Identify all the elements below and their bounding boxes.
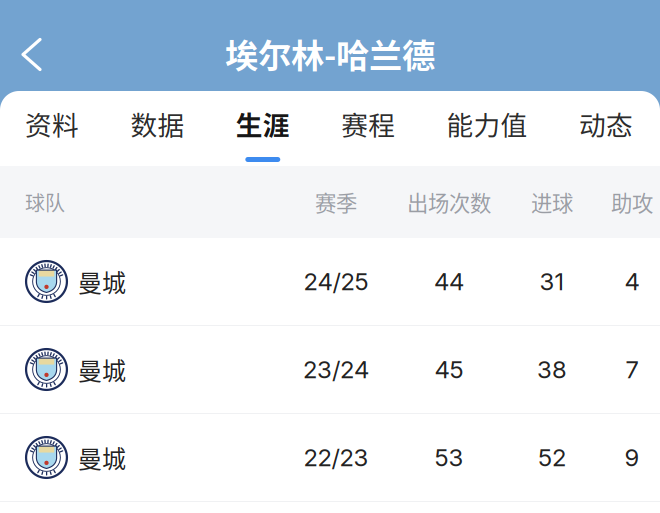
button[interactable]: 曼城 — [0, 414, 660, 501]
staticText: 动态 — [579, 104, 633, 143]
staticText: 45 — [434, 355, 463, 384]
button[interactable]: 数据 — [130, 91, 184, 166]
button[interactable]: 曼城 — [0, 238, 660, 325]
button[interactable]: 赛程 — [341, 91, 395, 166]
staticText: 进球 — [531, 187, 573, 217]
staticText: 曼城 — [78, 352, 126, 387]
staticText: 53 — [434, 443, 463, 472]
staticText: 资料 — [25, 104, 79, 143]
staticText: 曼城 — [78, 264, 126, 299]
staticText: 赛季 — [315, 187, 357, 217]
button[interactable]: 能力值 — [447, 91, 528, 166]
button[interactable]: 动态 — [579, 91, 633, 166]
staticText: 球队 — [25, 187, 65, 216]
staticText: 38 — [537, 355, 567, 384]
staticText: 埃尔林-哈兰德 — [225, 29, 435, 78]
staticText: 4 — [624, 267, 639, 296]
staticText: 44 — [434, 267, 464, 296]
staticText: 生涯 — [236, 104, 290, 143]
staticText: 赛程 — [341, 104, 395, 143]
button[interactable]: 曼城 — [0, 326, 660, 413]
staticText: 22/23 — [303, 443, 368, 472]
staticText: 数据 — [130, 104, 184, 143]
staticText: 52 — [538, 443, 566, 472]
staticText: 助攻 — [611, 187, 653, 217]
staticText: 24/25 — [303, 267, 368, 296]
staticText: 出场次数 — [407, 187, 491, 217]
staticText: 23/24 — [303, 355, 369, 384]
button[interactable]: 资料 — [25, 91, 79, 166]
staticText: 能力值 — [447, 104, 528, 143]
button[interactable]: 生涯 — [236, 91, 290, 166]
staticText: 9 — [624, 443, 639, 472]
button[interactable]: Back — [0, 21, 56, 87]
staticText: 7 — [625, 355, 638, 384]
staticText: 曼城 — [78, 440, 126, 475]
staticText: 31 — [539, 267, 564, 296]
